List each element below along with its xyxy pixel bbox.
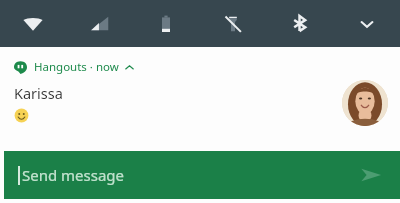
button[interactable]: Battery — [132, 0, 199, 47]
button[interactable]: Karissa — [0, 83, 400, 129]
staticText: Hangouts · now — [34, 59, 119, 75]
button[interactable]: Bluetooth — [266, 0, 333, 47]
button[interactable]: Flashlight off — [199, 0, 266, 47]
button[interactable]: Send message — [4, 151, 400, 199]
staticText: Karissa — [14, 83, 63, 103]
button[interactable]: Send — [358, 162, 384, 188]
button[interactable]: Hangouts · now — [0, 58, 400, 76]
button[interactable]: Expand quick settings — [333, 0, 400, 47]
button[interactable]: Karissa photo — [342, 80, 388, 126]
button[interactable]: Mobile signal — [66, 0, 132, 47]
staticText: Send message — [22, 165, 125, 185]
button[interactable]: Wi-Fi — [0, 0, 66, 47]
